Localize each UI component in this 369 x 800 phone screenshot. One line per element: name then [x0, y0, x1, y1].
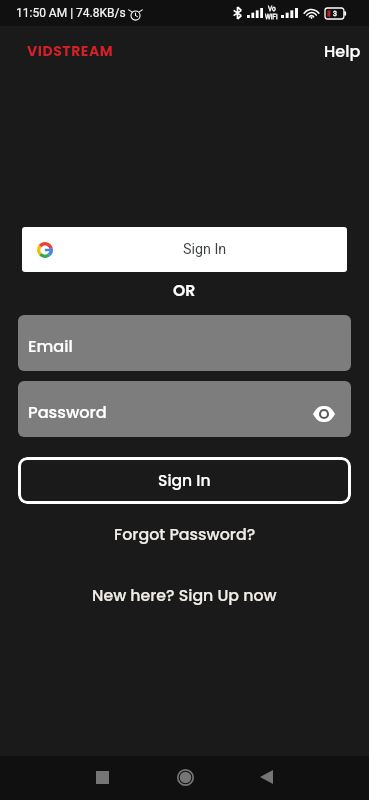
button[interactable]: Back	[242, 755, 290, 799]
button[interactable]: Home	[161, 755, 209, 799]
button[interactable]: Show password	[310, 400, 338, 428]
staticText: Forgot Password?	[114, 523, 256, 545]
button[interactable]: Password	[18, 381, 351, 437]
button[interactable]: Email	[18, 315, 351, 371]
staticText: Sign In	[158, 470, 211, 492]
staticText: Email	[28, 335, 73, 358]
staticText: Sign In	[183, 241, 227, 258]
button[interactable]: Sign In	[22, 227, 347, 272]
staticText: WiFi	[265, 13, 278, 21]
button[interactable]: Sign In	[18, 457, 351, 504]
button[interactable]: Forgot Password?	[108, 520, 262, 548]
staticText: 11:50 AM | 74.8KB/s	[16, 6, 126, 20]
staticText: VIDSTREAM	[27, 41, 114, 61]
staticText: Vo	[268, 5, 276, 13]
staticText: OR	[173, 280, 196, 301]
button[interactable]: New here? Sign Up now	[86, 581, 283, 609]
staticText: New here? Sign Up now	[92, 584, 277, 606]
button[interactable]: Help	[316, 35, 369, 67]
staticText: Help	[324, 40, 361, 62]
staticText: 3	[333, 10, 337, 18]
staticText: Password	[28, 401, 107, 424]
other: Alarm set	[129, 8, 142, 21]
button[interactable]: VIDSTREAM	[27, 41, 114, 61]
button[interactable]: Recents	[78, 755, 126, 799]
